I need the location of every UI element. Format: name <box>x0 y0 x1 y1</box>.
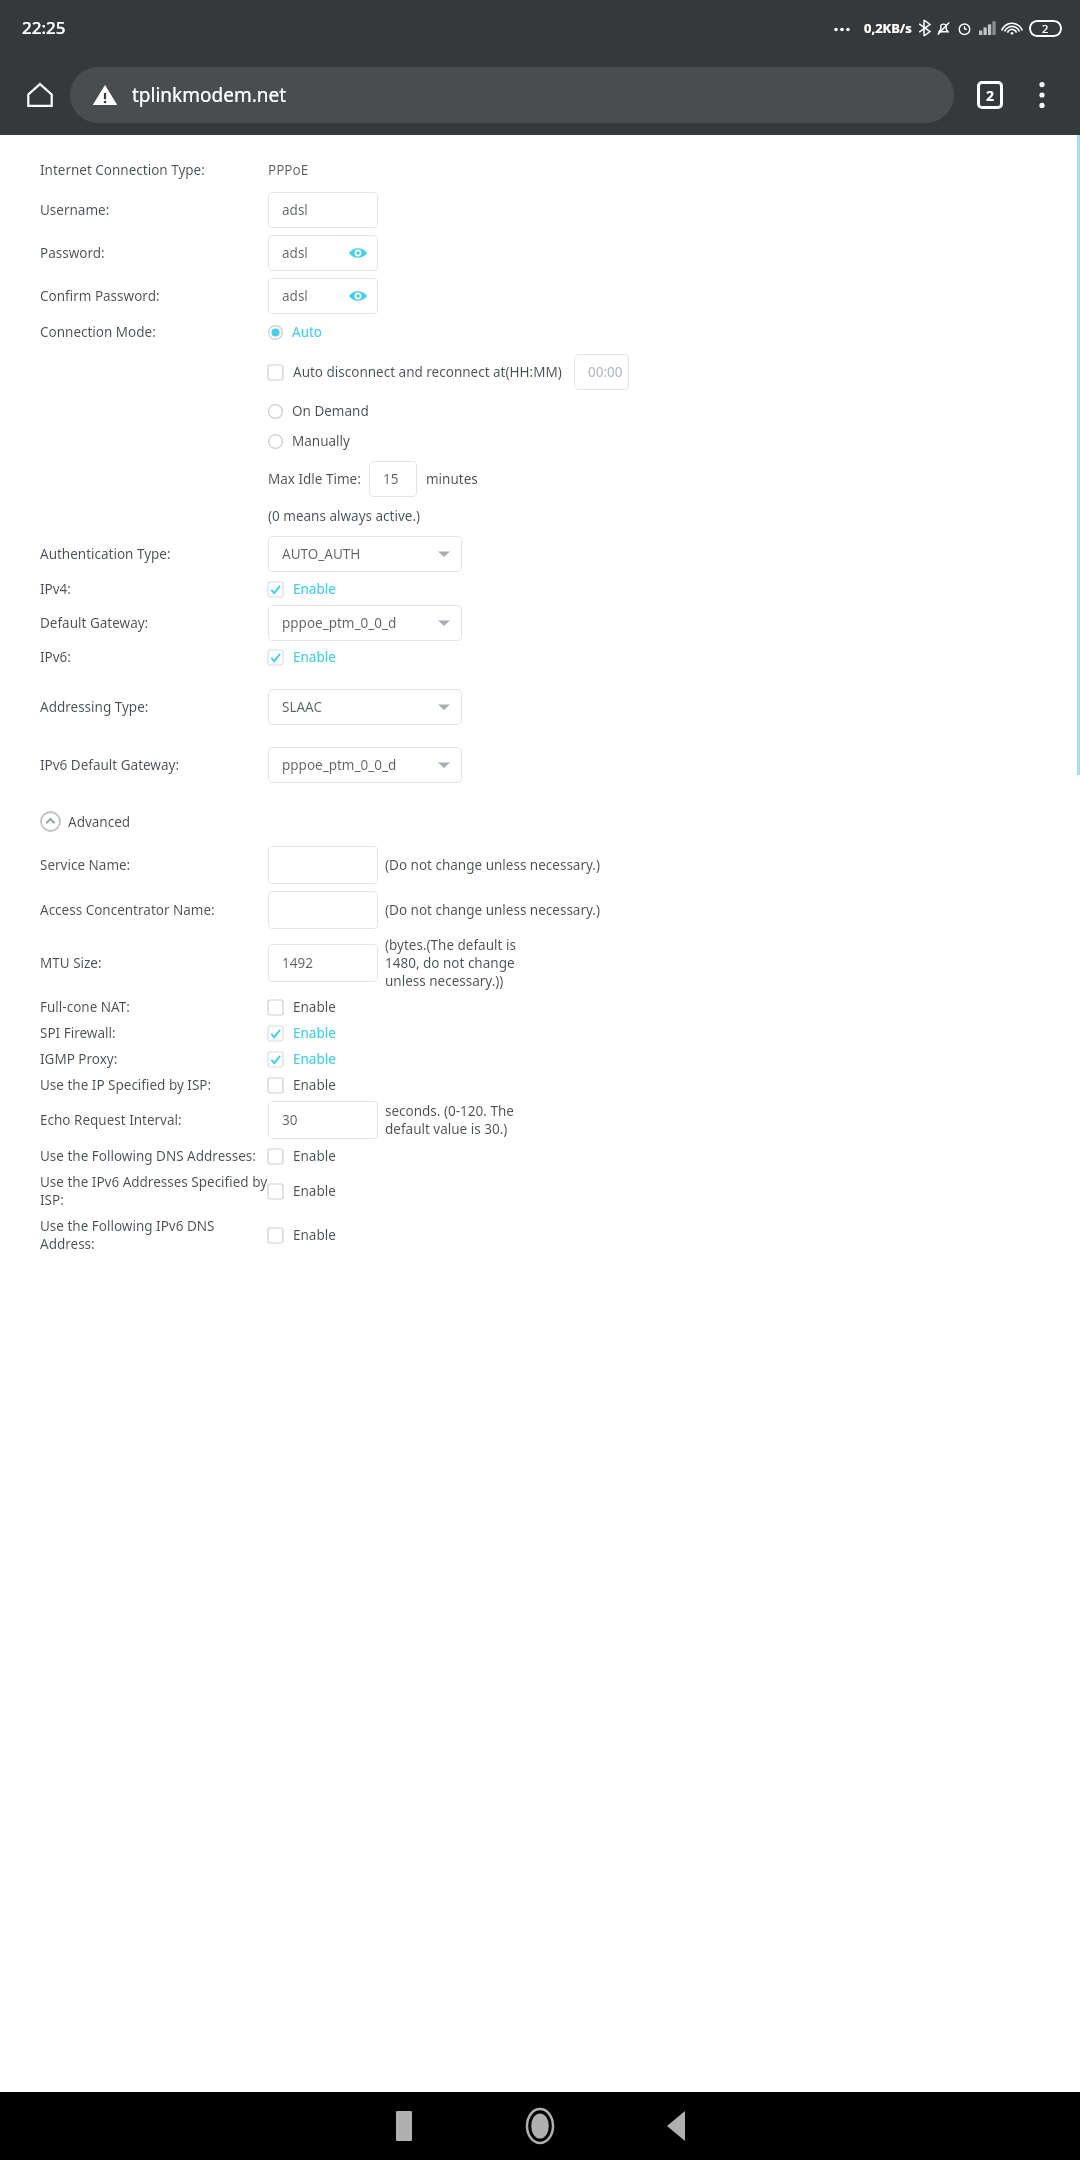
staticText: Advanced <box>68 813 131 831</box>
staticText: Addressing Type: <box>40 698 268 716</box>
button[interactable]: 15 <box>369 461 417 497</box>
staticText: 00:00 <box>588 363 623 381</box>
staticText: Enable <box>293 1182 336 1200</box>
button[interactable]: Recent apps <box>373 2095 435 2157</box>
staticText: Auto disconnect and reconnect at(HH:MM) <box>293 363 562 381</box>
staticText: AUTO_AUTH <box>282 545 361 563</box>
staticText: IPv6: <box>40 648 268 666</box>
staticText: pppoe_ptm_0_0_d <box>282 614 397 632</box>
staticText: adsl <box>282 287 308 305</box>
staticText: Enable <box>293 648 336 666</box>
button[interactable] <box>268 891 378 929</box>
button[interactable]: Auto disconnect and reconnect at(HH:MM) <box>268 363 562 381</box>
staticText: 30 <box>282 1111 298 1129</box>
staticText: (Do not change unless necessary.) <box>385 856 601 874</box>
button[interactable]: Back <box>645 2095 707 2157</box>
button[interactable]: Enable <box>268 1024 336 1042</box>
button[interactable]: pppoe_ptm_0_0_d <box>268 747 462 783</box>
staticText: Manually <box>292 432 350 450</box>
staticText: IPv4: <box>40 580 268 598</box>
staticText: 0,2KB/s <box>864 19 912 37</box>
button[interactable]: Enable <box>268 1050 336 1068</box>
staticText: Enable <box>293 1226 336 1244</box>
button[interactable]: Tabs <box>968 73 1012 117</box>
staticText: PPPoE <box>268 161 309 179</box>
button[interactable]: 00:00 <box>574 354 629 390</box>
button[interactable]: Enable <box>268 1226 336 1244</box>
staticText: 2 <box>986 86 995 105</box>
button[interactable]: 30 <box>268 1101 378 1139</box>
button[interactable]: Auto <box>268 323 323 341</box>
staticText: Password: <box>40 244 268 262</box>
staticText: On Demand <box>292 402 369 420</box>
button[interactable]: Home <box>16 71 64 119</box>
button[interactable]: pppoe_ptm_0_0_d <box>268 605 462 641</box>
staticText: Auto <box>292 323 323 341</box>
staticText: Enable <box>293 1147 336 1165</box>
button[interactable]: tplinkmodem.net <box>70 67 954 123</box>
staticText: Full-cone NAT: <box>40 998 268 1016</box>
staticText: adsl <box>282 201 308 219</box>
staticText: 1492 <box>282 954 313 972</box>
staticText: IGMP Proxy: <box>40 1050 268 1068</box>
staticText: Enable <box>293 1050 336 1068</box>
staticText: (0 means always active.) <box>268 507 421 525</box>
button[interactable]: Enable <box>268 1182 336 1200</box>
button[interactable]: Enable <box>268 1076 336 1094</box>
staticText: Enable <box>293 1076 336 1094</box>
button[interactable]: AUTO_AUTH <box>268 536 462 572</box>
staticText: SPI Firewall: <box>40 1024 268 1042</box>
staticText: Use the Following IPv6 DNS Address: <box>40 1217 268 1253</box>
button[interactable]: Enable <box>268 648 336 666</box>
staticText: Access Concentrator Name: <box>40 901 268 919</box>
staticText: Enable <box>293 580 336 598</box>
button[interactable]: Enable <box>268 580 336 598</box>
button[interactable]: Enable <box>268 998 336 1016</box>
staticText: adsl <box>282 244 308 262</box>
staticText: 22:25 <box>22 16 66 39</box>
staticText: Use the IP Specified by ISP: <box>40 1076 268 1094</box>
button[interactable]: adsl <box>268 235 378 271</box>
staticText: Use the IPv6 Addresses Specified by ISP: <box>40 1173 268 1209</box>
staticText: Enable <box>293 998 336 1016</box>
staticText: Authentication Type: <box>40 545 268 563</box>
staticText: Use the Following DNS Addresses: <box>40 1147 268 1165</box>
button[interactable]: SLAAC <box>268 689 462 725</box>
button[interactable] <box>268 846 378 884</box>
button[interactable]: Advanced <box>40 811 131 832</box>
staticText: Internet Connection Type: <box>40 161 268 179</box>
staticText: (bytes.(The default is 1480, do not chan… <box>385 936 537 990</box>
staticText: Service Name: <box>40 856 268 874</box>
staticText: Max Idle Time: <box>268 470 361 488</box>
staticText: SLAAC <box>282 698 323 716</box>
staticText: Enable <box>293 1024 336 1042</box>
staticText: Connection Mode: <box>40 323 268 341</box>
staticText: minutes <box>426 470 478 488</box>
staticText: MTU Size: <box>40 954 268 972</box>
staticText: Username: <box>40 201 268 219</box>
staticText: 2 <box>1042 21 1049 36</box>
button[interactable]: 1492 <box>268 944 378 982</box>
button[interactable]: Enable <box>268 1147 336 1165</box>
staticText: Default Gateway: <box>40 614 268 632</box>
staticText: (Do not change unless necessary.) <box>385 901 601 919</box>
staticText: Confirm Password: <box>40 287 268 305</box>
button[interactable]: More options <box>1020 73 1064 117</box>
staticText: Echo Request Interval: <box>40 1111 268 1129</box>
staticText: seconds. (0-120. The default value is 30… <box>385 1102 537 1138</box>
staticText: IPv6 Default Gateway: <box>40 756 268 774</box>
button[interactable]: adsl <box>268 278 378 314</box>
button[interactable]: Home <box>509 2095 571 2157</box>
button[interactable]: adsl <box>268 192 378 228</box>
staticText: tplinkmodem.net <box>132 82 287 108</box>
staticText: pppoe_ptm_0_0_d <box>282 756 397 774</box>
staticText: 15 <box>383 470 399 488</box>
